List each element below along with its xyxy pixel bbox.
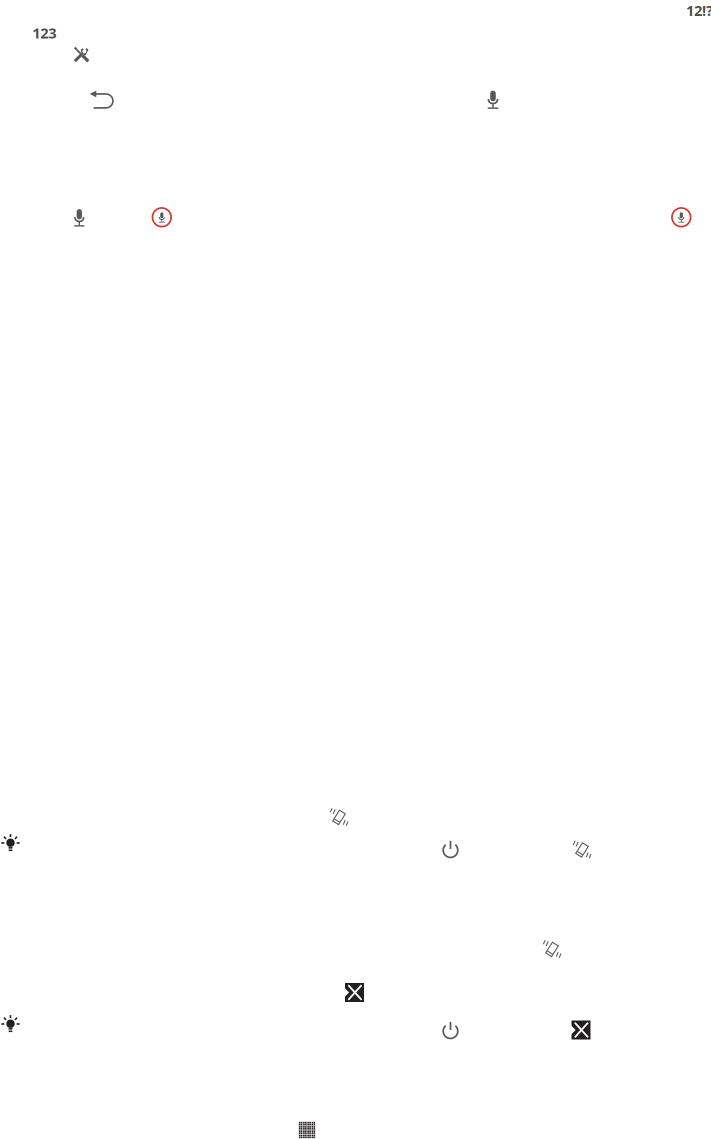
button[interactable]: Delete <box>571 1020 590 1039</box>
button[interactable]: Power <box>441 1021 459 1039</box>
button[interactable]: Tips <box>1 1014 20 1033</box>
button[interactable]: Vibration <box>571 839 592 860</box>
button[interactable]: Tips <box>1 833 20 852</box>
button[interactable]: Microphone <box>73 208 85 227</box>
button[interactable]: Microphone off <box>152 207 172 227</box>
button[interactable]: Tools <box>73 46 90 63</box>
button[interactable]: Return <box>89 91 112 108</box>
button[interactable]: Keypad <box>298 1121 315 1138</box>
button[interactable]: Delete <box>345 983 364 1002</box>
button[interactable]: Power <box>441 840 459 858</box>
button[interactable]: Vibration <box>541 938 562 959</box>
button[interactable]: 12!? <box>686 0 711 20</box>
button[interactable]: 123 <box>32 23 56 43</box>
button[interactable]: Microphone off <box>671 207 691 227</box>
staticText: 123 <box>32 23 56 43</box>
staticText: 12!? <box>686 0 711 20</box>
button[interactable]: Vibration <box>328 806 349 827</box>
button[interactable]: Dictate <box>487 90 499 109</box>
